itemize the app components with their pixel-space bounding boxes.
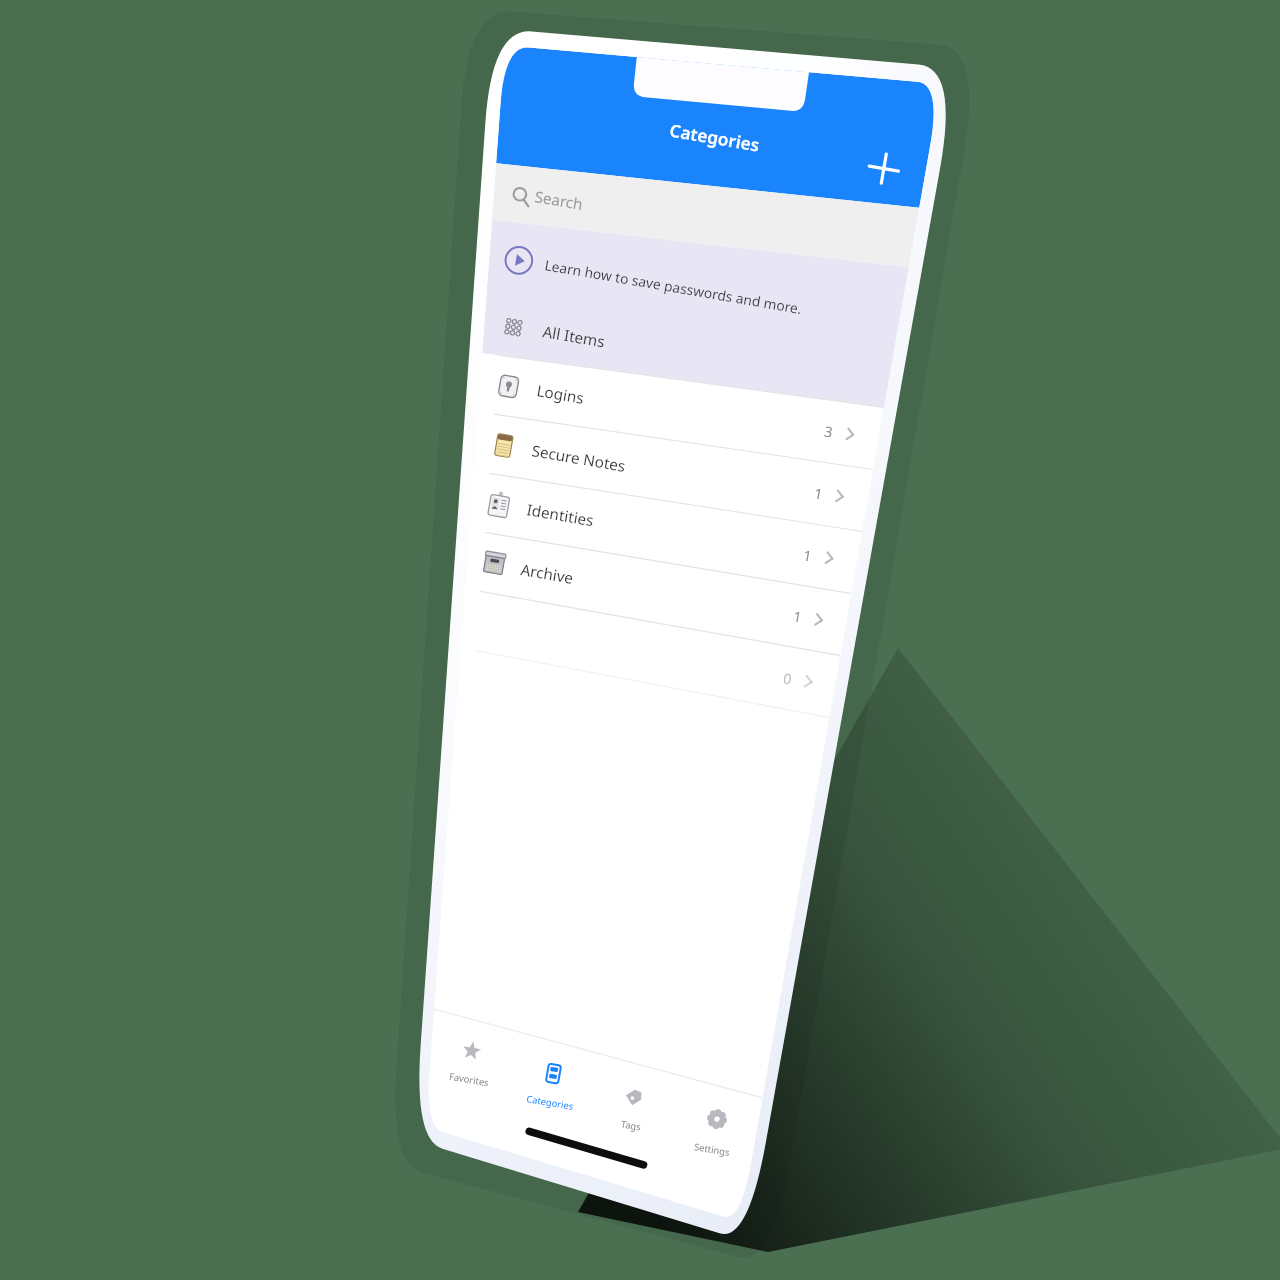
button[interactable]: Identities (442, 426, 884, 490)
staticText: Categories (525, 1092, 575, 1113)
staticText: 1 (801, 545, 813, 566)
staticText: 1 (812, 483, 824, 504)
button[interactable]: Logins (458, 298, 900, 362)
staticText: Archive (519, 559, 575, 589)
staticText: Settings (693, 1140, 731, 1159)
staticText: Logins (535, 380, 586, 409)
staticText: Secure Notes (530, 440, 627, 477)
button[interactable]: Tags (512, 1068, 616, 1154)
button[interactable]: Favorites (328, 982, 432, 1068)
button[interactable]: All Items (468, 236, 908, 298)
staticText: Learn how to save passwords and more. (543, 255, 804, 318)
staticText: 0 (781, 668, 793, 689)
staticText: Tags (620, 1117, 642, 1134)
staticText: Search (533, 186, 585, 215)
staticText: Identities (525, 499, 596, 531)
button[interactable]: Archive (434, 490, 876, 554)
staticText: 1 (791, 606, 803, 627)
button[interactable]: Categories (414, 1026, 518, 1112)
staticText: 3 (822, 421, 834, 442)
staticText: Favorites (448, 1070, 490, 1089)
button[interactable]: Add item (900, 98, 970, 168)
button[interactable]: Secure Notes (450, 362, 892, 426)
button[interactable]: Settings (614, 1108, 718, 1194)
button[interactable]: Learn how to save passwords and more. (482, 168, 912, 230)
staticText: All Items (541, 321, 607, 352)
staticText: Categories (668, 118, 761, 158)
button[interactable]: Search (492, 112, 912, 168)
